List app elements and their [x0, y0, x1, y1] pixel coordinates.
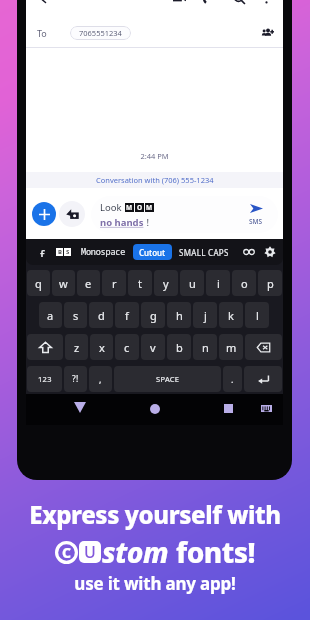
staticText: Look [100, 201, 125, 214]
button[interactable]: z [65, 334, 88, 360]
button[interactable]: Add attachment [32, 202, 56, 226]
button[interactable]: Backspace [245, 334, 282, 360]
button[interactable]: w [52, 270, 75, 296]
button[interactable]: SPACE [114, 366, 221, 392]
button[interactable]: Monospace [81, 246, 126, 258]
staticText: k [228, 308, 234, 323]
button[interactable]: g [141, 302, 165, 328]
button[interactable]: k [219, 302, 243, 328]
staticText: h [176, 308, 183, 323]
button[interactable]: ?! [64, 366, 87, 392]
staticText: use it with any app! [74, 572, 236, 595]
staticText: q [35, 276, 42, 291]
staticText: j [204, 308, 207, 323]
button[interactable]: Emoji style [243, 246, 255, 258]
button[interactable]: u [180, 270, 204, 296]
staticText: 123 [38, 374, 52, 384]
staticText: v [150, 340, 156, 355]
button[interactable]: Boxed style [56, 248, 71, 256]
staticText: g [150, 308, 157, 323]
staticText: ?! [72, 373, 79, 385]
button[interactable]: Switch keyboard [261, 405, 272, 412]
staticText: l [256, 308, 259, 323]
button[interactable]: , [89, 366, 112, 392]
staticText: m [226, 340, 237, 355]
button[interactable]: o [232, 270, 256, 296]
button[interactable]: 7065551234 [70, 26, 131, 40]
button[interactable]: Back [36, 0, 50, 5]
staticText: SMS [249, 217, 263, 226]
staticText: Conversation with (706) 555-1234 [96, 175, 214, 185]
button[interactable]: Settings [264, 246, 276, 258]
button[interactable]: More options [260, 0, 273, 5]
button[interactable]: s [64, 302, 87, 328]
button[interactable]: x [90, 334, 113, 360]
staticText: S [66, 248, 70, 256]
staticText: O [137, 203, 143, 212]
staticText: b [176, 340, 183, 355]
staticText: , [99, 373, 102, 385]
staticText: To [37, 27, 47, 39]
staticText: no hands [100, 216, 144, 229]
button[interactable]: f [115, 302, 139, 328]
button[interactable]: Search [233, 0, 246, 5]
staticText: u [189, 276, 196, 291]
staticText: c [124, 340, 130, 355]
button[interactable]: Enter [244, 366, 282, 392]
staticText: e [85, 276, 92, 291]
button[interactable]: y [154, 270, 178, 296]
button[interactable]: h [167, 302, 191, 328]
button[interactable]: Hide keyboard [74, 402, 86, 413]
button[interactable]: d [89, 302, 113, 328]
button[interactable]: r [102, 270, 126, 296]
staticText: . [231, 373, 234, 385]
staticText: ƒ [39, 247, 45, 257]
staticText: C [62, 543, 72, 562]
button[interactable]: Shift [27, 334, 63, 360]
staticText: f [125, 308, 129, 323]
button[interactable]: i [206, 270, 230, 296]
staticText: r [112, 276, 117, 291]
button[interactable]: c [115, 334, 139, 360]
button[interactable]: Call [203, 0, 216, 5]
staticText: a [47, 308, 54, 323]
staticText: d [98, 308, 105, 323]
staticText: B [58, 248, 62, 256]
button[interactable]: Video call [173, 0, 186, 5]
staticText: y [163, 276, 169, 291]
staticText: z [74, 340, 80, 355]
staticText: Express yourself with [29, 498, 281, 531]
button[interactable]: Add people [261, 27, 274, 40]
button[interactable]: Camera [59, 201, 85, 227]
button[interactable]: q [27, 270, 50, 296]
button[interactable]: 123 [27, 366, 62, 392]
button[interactable]: a [39, 302, 62, 328]
staticText: fonts! [176, 533, 256, 571]
button[interactable]: t [128, 270, 152, 296]
staticText: o [241, 276, 248, 291]
staticText: w [59, 276, 68, 291]
staticText: M [146, 203, 153, 212]
button[interactable]: m [219, 334, 243, 360]
button[interactable]: SMALL CAPS [179, 247, 229, 258]
staticText: 2:44 PM [26, 151, 283, 161]
staticText: i [217, 276, 220, 291]
button[interactable]: Send SMS [234, 204, 278, 226]
staticText: x [99, 340, 105, 355]
staticText: s [73, 308, 79, 323]
button[interactable]: v [141, 334, 165, 360]
button[interactable]: Home [150, 404, 160, 414]
button[interactable]: b [167, 334, 191, 360]
button[interactable]: j [193, 302, 217, 328]
button[interactable]: e [77, 270, 100, 296]
button[interactable]: Cutout [133, 244, 172, 260]
staticText: SPACE [156, 374, 180, 384]
button[interactable]: n [193, 334, 217, 360]
button[interactable]: Fonts [37, 247, 47, 257]
button[interactable]: . [223, 366, 242, 392]
staticText: Cutout [139, 247, 166, 258]
button[interactable]: Look [91, 196, 278, 233]
button[interactable]: l [245, 302, 269, 328]
button[interactable]: p [258, 270, 282, 296]
